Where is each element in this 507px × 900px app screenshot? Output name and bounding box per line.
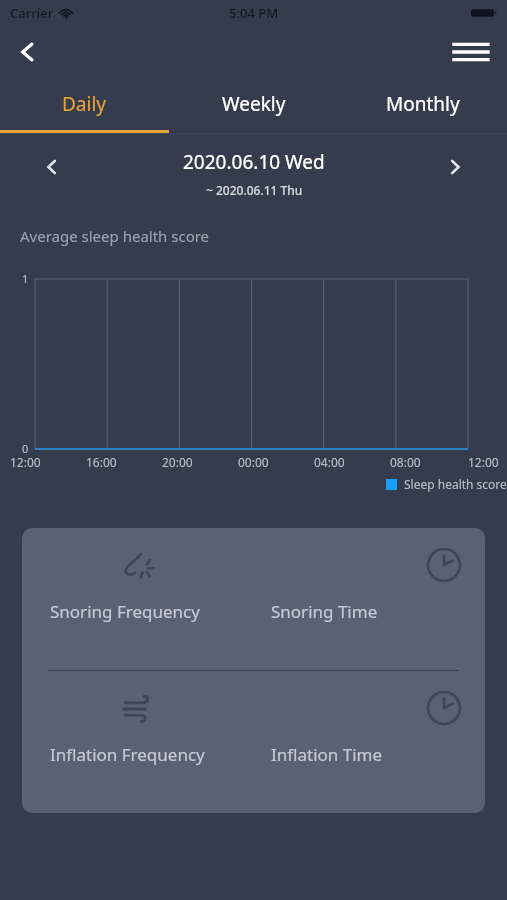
staticText: 12:00 <box>468 454 499 470</box>
staticText: Carrier <box>10 4 54 22</box>
button[interactable]: Weekly <box>169 78 338 130</box>
other: Time <box>423 544 465 586</box>
staticText: 04:00 <box>314 454 345 470</box>
staticText: 2020.06.10 Wed <box>183 149 325 175</box>
button[interactable]: Time <box>253 671 485 813</box>
button[interactable]: Monthly <box>338 78 507 130</box>
staticText: 16:00 <box>86 454 117 470</box>
staticText: Snoring Time <box>271 600 378 623</box>
staticText: Inflation Time <box>271 743 383 766</box>
button[interactable]: Previous day <box>30 145 74 189</box>
staticText: Sleep health score <box>404 476 507 492</box>
other: Time <box>423 687 465 729</box>
button[interactable]: Time <box>253 528 485 670</box>
staticText: ~ 2020.06.11 Thu <box>206 182 303 198</box>
staticText: Weekly <box>222 91 286 117</box>
button[interactable]: Back <box>6 30 50 74</box>
other: Inflation <box>118 689 158 729</box>
staticText: 00:00 <box>238 454 269 470</box>
staticText: 1 <box>22 271 29 286</box>
staticText: 12:00 <box>10 454 41 470</box>
button[interactable]: Daily <box>0 78 169 130</box>
staticText: Inflation Frequency <box>50 743 205 766</box>
button[interactable]: Snoring <box>22 528 253 670</box>
staticText: 08:00 <box>390 454 421 470</box>
button[interactable]: Menu <box>449 30 493 74</box>
staticText: Monthly <box>386 91 460 117</box>
button[interactable]: Inflation <box>22 671 253 813</box>
staticText: Snoring Frequency <box>50 600 200 623</box>
staticText: Daily <box>62 91 107 117</box>
button[interactable]: Next day <box>433 145 477 189</box>
staticText: Average sleep health score <box>20 226 210 246</box>
staticText: 20:00 <box>162 454 193 470</box>
other: Snoring <box>118 546 158 586</box>
staticText: 0 <box>22 441 29 456</box>
staticText: 5:04 PM <box>229 4 279 22</box>
